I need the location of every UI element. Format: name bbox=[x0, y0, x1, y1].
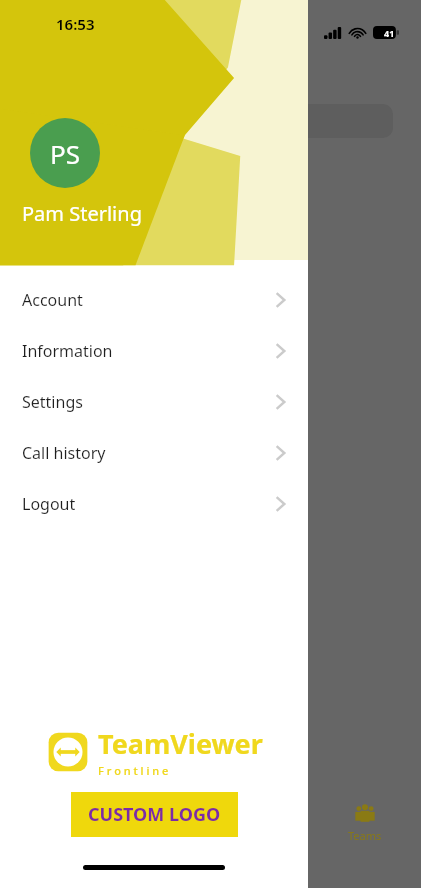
staticText: Information bbox=[22, 340, 113, 362]
staticText: F r o n t l i n e bbox=[98, 763, 169, 778]
staticText: 41 bbox=[384, 27, 395, 39]
button[interactable]: Teams bbox=[330, 798, 400, 847]
button[interactable]: Logout bbox=[0, 478, 308, 529]
button[interactable]: Account bbox=[0, 274, 308, 325]
staticText: Pam Sterling bbox=[22, 200, 142, 227]
button[interactable]: PS bbox=[30, 118, 100, 188]
staticText: Logout bbox=[22, 493, 76, 515]
staticText: TeamViewer bbox=[98, 725, 263, 762]
staticText: CUSTOM LOGO bbox=[88, 802, 221, 827]
staticText: Teams bbox=[348, 828, 382, 843]
staticText: Settings bbox=[22, 391, 83, 413]
button[interactable]: Information bbox=[0, 325, 308, 376]
button[interactable]: TeamViewer bbox=[0, 725, 308, 778]
staticText: Call history bbox=[22, 442, 106, 464]
button[interactable]: Settings bbox=[0, 376, 308, 427]
staticText: PS bbox=[50, 136, 81, 171]
button[interactable]: Call history bbox=[0, 427, 308, 478]
staticText: Account bbox=[22, 289, 83, 311]
staticText: 16:53 bbox=[56, 14, 95, 34]
button[interactable]: CUSTOM LOGO bbox=[71, 792, 238, 837]
